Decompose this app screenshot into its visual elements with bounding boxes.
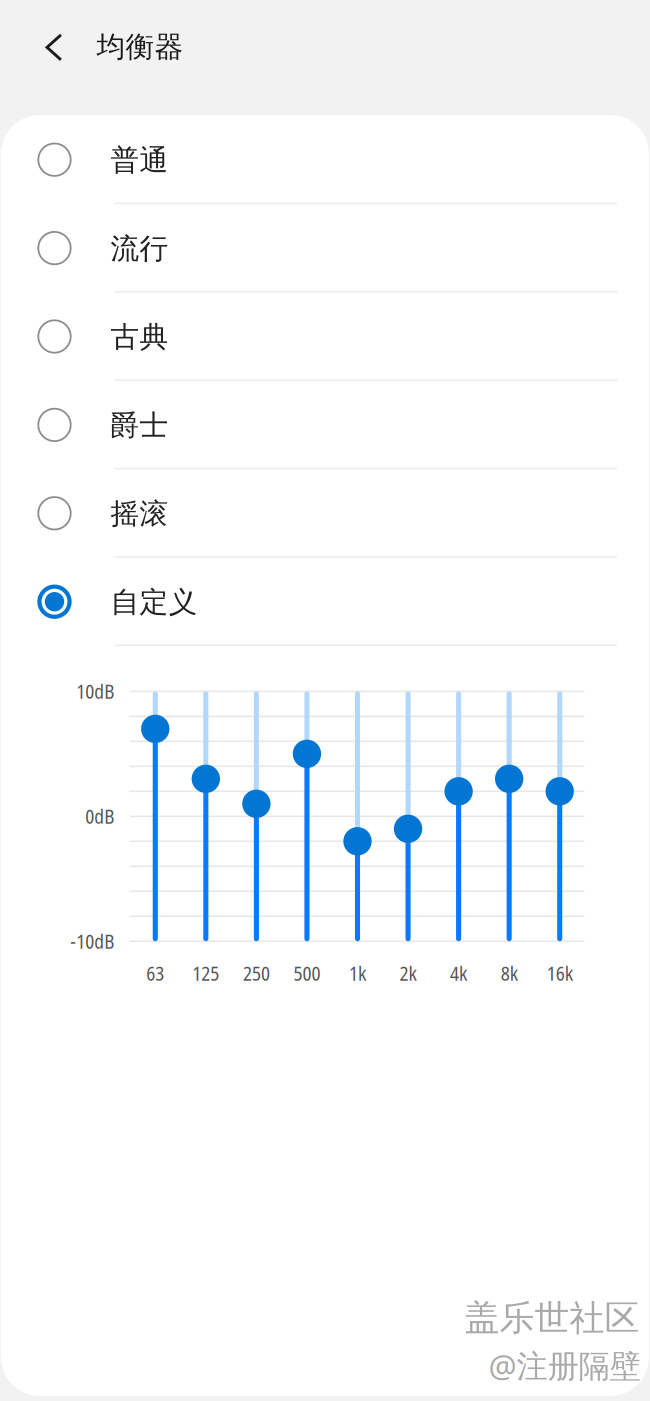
button[interactable]: 普通 — [1, 115, 649, 203]
staticText: 500 — [293, 960, 320, 986]
staticText: 盖乐世社区 — [464, 1296, 639, 1340]
button[interactable]: 8k Hz band — [484, 671, 534, 961]
staticText: 10dB — [76, 678, 114, 704]
button[interactable]: 1k Hz band — [332, 671, 383, 961]
button[interactable]: 2k Hz band — [383, 671, 433, 961]
staticText: 8k — [501, 960, 518, 986]
staticText: 摇滚 — [110, 496, 168, 532]
button[interactable]: 63 Hz band — [130, 671, 181, 961]
staticText: 16k — [547, 960, 573, 986]
staticText: 0dB — [85, 803, 114, 829]
button[interactable]: 250 Hz band — [231, 671, 282, 961]
staticText: -10dB — [70, 928, 114, 954]
staticText: 4k — [450, 960, 467, 986]
button[interactable]: 古典 — [1, 292, 649, 380]
button[interactable]: Back — [25, 19, 81, 75]
staticText: 爵士 — [110, 407, 168, 443]
button[interactable]: 500 Hz band — [282, 671, 332, 961]
button[interactable]: 爵士 — [1, 380, 649, 469]
staticText: 125 — [192, 960, 219, 986]
button[interactable]: 流行 — [1, 203, 649, 292]
staticText: 普通 — [110, 142, 168, 178]
staticText: 均衡器 — [96, 29, 183, 65]
staticText: 自定义 — [110, 584, 197, 620]
staticText: 2k — [400, 960, 417, 986]
staticText: @注册隔壁 — [488, 1344, 640, 1387]
button[interactable]: 16k Hz band — [534, 671, 585, 961]
button[interactable]: 摇滚 — [1, 469, 649, 557]
button[interactable]: 自定义 — [1, 557, 649, 645]
staticText: 流行 — [110, 230, 168, 267]
staticText: 250 — [243, 960, 270, 986]
staticText: 63 — [146, 960, 164, 986]
staticText: 1k — [349, 960, 366, 986]
staticText: 古典 — [110, 319, 168, 355]
button[interactable]: 4k Hz band — [433, 671, 484, 961]
button[interactable]: 125 Hz band — [181, 671, 231, 961]
